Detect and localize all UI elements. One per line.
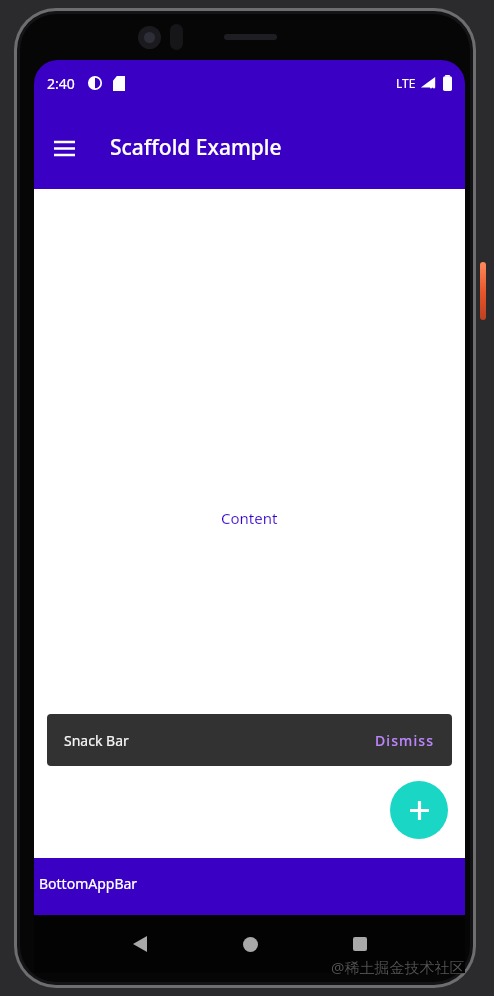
- button[interactable]: BottomAppBar: [34, 858, 465, 915]
- staticText: Scaffold Example: [110, 133, 282, 162]
- button[interactable]: Home: [228, 922, 272, 966]
- staticText: Content: [221, 508, 278, 528]
- staticText: LTE: [396, 75, 416, 91]
- staticText: Dismiss: [375, 731, 435, 750]
- staticText: 2:40: [47, 74, 75, 93]
- button[interactable]: Dismiss: [373, 726, 437, 755]
- button[interactable]: Open navigation menu: [40, 124, 88, 172]
- button[interactable]: Back: [118, 922, 162, 966]
- button[interactable]: Recent apps: [338, 922, 382, 966]
- staticText: BottomAppBar: [39, 874, 138, 893]
- staticText: Snack Bar: [64, 731, 129, 750]
- staticText: @稀土掘金技术社区: [331, 957, 465, 977]
- button[interactable]: Snack Bar: [47, 714, 452, 766]
- button[interactable]: Add: [390, 781, 448, 839]
